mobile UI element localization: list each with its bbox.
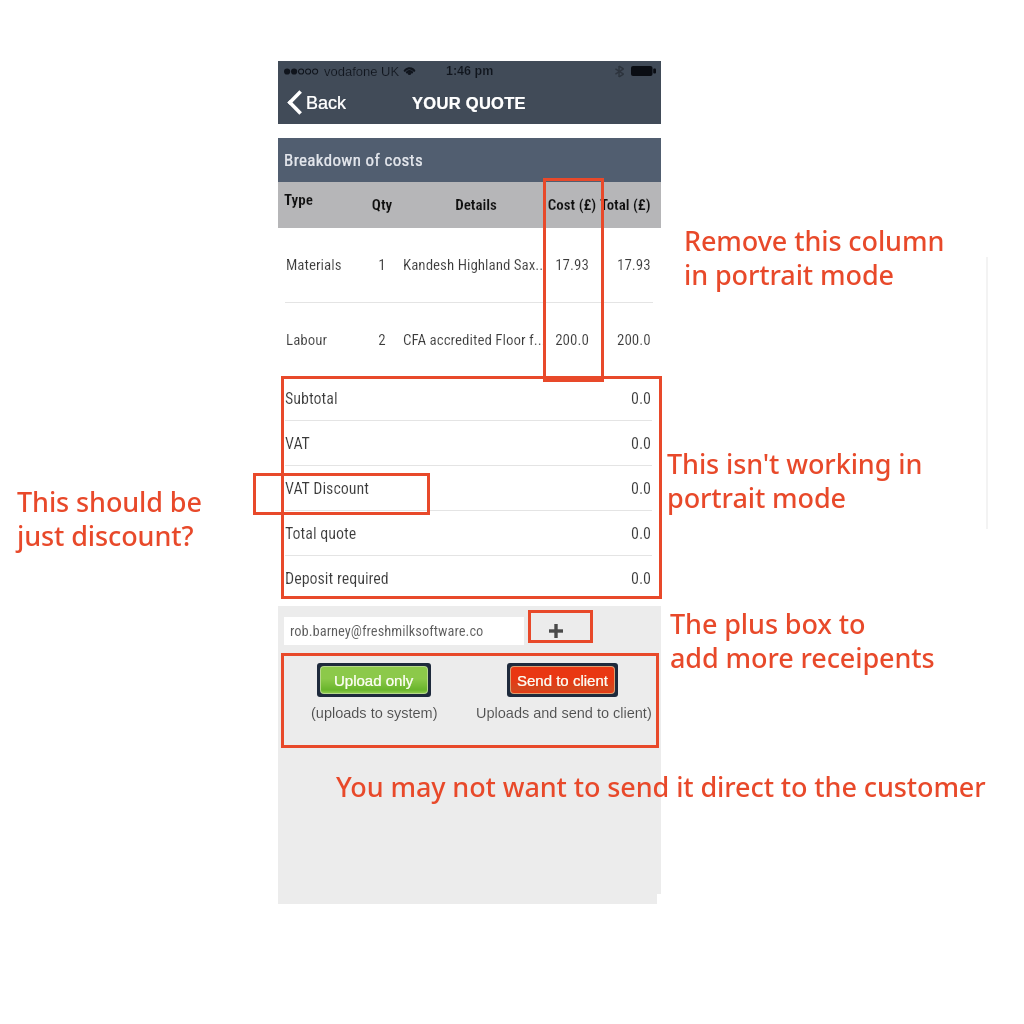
staticText: Labour [286, 331, 328, 349]
button[interactable]: Add recipient [524, 607, 588, 654]
staticText: (uploads to system) [311, 705, 438, 721]
staticText: 0.0 [631, 569, 652, 588]
staticText: The plus box to add more receipents [670, 605, 935, 676]
staticText: Back [306, 93, 347, 113]
staticText: Send to client [517, 672, 608, 689]
button[interactable]: Send to client [510, 666, 615, 694]
staticText: Upload only [334, 672, 414, 689]
staticText: 1 [322, 256, 442, 274]
button[interactable]: VAT [285, 421, 652, 465]
staticText: Total (£) [600, 196, 651, 214]
staticText: VAT Discount [285, 479, 370, 498]
button[interactable]: rob.barney@freshmilksoftware.co [284, 617, 524, 645]
staticText: VAT [285, 434, 310, 453]
button[interactable]: Subtotal [285, 376, 652, 420]
staticText: 0.0 [631, 434, 652, 453]
staticText: Remove this column in portrait mode [684, 222, 945, 293]
staticText: Total quote [285, 524, 357, 543]
button[interactable]: VAT Discount [285, 466, 652, 510]
staticText: You may not want to send it direct to th… [336, 768, 986, 805]
staticText: vodafone UK [324, 64, 400, 79]
button[interactable]: Labour [278, 303, 661, 376]
staticText: CFA accredited Floor f... [403, 331, 548, 349]
staticText: 0.0 [631, 479, 652, 498]
staticText: 200.0 [512, 331, 632, 349]
staticText: 0.0 [631, 389, 652, 408]
button[interactable]: Materials [278, 228, 661, 302]
staticText: 200.0 [617, 331, 651, 349]
staticText: Deposit required [285, 569, 389, 588]
staticText: 17.93 [512, 256, 632, 274]
staticText: 0.0 [631, 524, 652, 543]
staticText: 1:46 pm [446, 64, 494, 78]
button[interactable]: Back [284, 87, 351, 118]
staticText: Details [416, 196, 536, 214]
staticText: Subtotal [285, 389, 338, 408]
staticText: Materials [286, 256, 342, 274]
staticText: This should be just discount? [17, 483, 202, 554]
staticText: Qty [322, 196, 442, 214]
staticText: This isn't working in portrait mode [667, 445, 923, 516]
staticText: Kandesh Highland Sax... [403, 256, 548, 274]
button[interactable]: Upload only [320, 666, 428, 694]
staticText: YOUR QUOTE [412, 94, 526, 112]
staticText: rob.barney@freshmilksoftware.co [290, 623, 484, 640]
staticText: Uploads and send to client) [476, 705, 652, 721]
staticText: Cost (£) [512, 196, 632, 214]
staticText: Type [284, 191, 313, 209]
staticText: Breakdown of costs [284, 150, 424, 170]
staticText: 17.93 [617, 256, 651, 274]
button[interactable]: Deposit required [285, 556, 652, 600]
button[interactable]: Total quote [285, 511, 652, 555]
staticText: 2 [322, 331, 442, 349]
